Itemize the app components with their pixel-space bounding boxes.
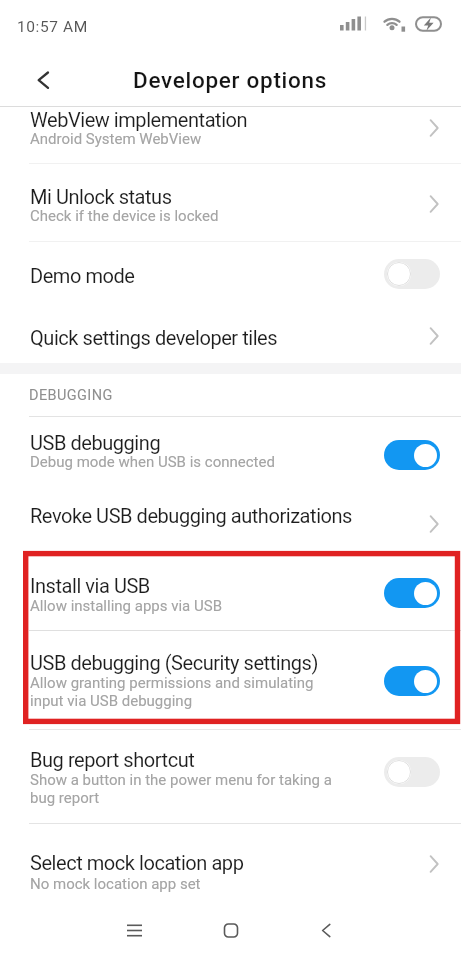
staticText: No mock location app set bbox=[30, 875, 201, 893]
button[interactable] bbox=[384, 440, 440, 470]
staticText: Android System WebView bbox=[30, 130, 202, 148]
button[interactable] bbox=[297, 900, 357, 960]
button[interactable] bbox=[0, 241, 461, 308]
staticText: Check if the device is locked bbox=[30, 207, 219, 225]
staticText: Quick settings developer tiles bbox=[30, 326, 278, 349]
button[interactable] bbox=[384, 757, 440, 787]
staticText: Debug mode when USB is connected bbox=[30, 453, 275, 471]
staticText: Developer options bbox=[133, 67, 328, 93]
staticText: Bug report shortcut bbox=[30, 748, 195, 771]
staticText: Select mock location app bbox=[30, 851, 244, 874]
button[interactable] bbox=[0, 494, 461, 552]
button[interactable] bbox=[24, 64, 60, 96]
button[interactable] bbox=[0, 164, 461, 242]
button[interactable] bbox=[384, 666, 440, 696]
staticText: Show a button in the power menu for taki… bbox=[30, 771, 332, 807]
staticText: USB debugging (Security settings) bbox=[30, 651, 318, 674]
button[interactable] bbox=[384, 578, 440, 608]
button[interactable] bbox=[0, 823, 461, 900]
staticText: DEBUGGING bbox=[29, 387, 113, 404]
staticText: USB debugging bbox=[30, 431, 161, 454]
staticText: Allow installing apps via USB bbox=[30, 597, 222, 615]
staticText: Allow granting permissions and simulatin… bbox=[30, 674, 314, 710]
button[interactable] bbox=[201, 900, 261, 960]
staticText: Demo mode bbox=[30, 264, 135, 287]
button[interactable] bbox=[0, 630, 461, 729]
button[interactable] bbox=[104, 900, 164, 960]
button[interactable] bbox=[0, 552, 461, 631]
staticText: 10:57 AM bbox=[17, 18, 88, 36]
staticText: Mi Unlock status bbox=[30, 185, 172, 208]
button[interactable] bbox=[0, 87, 461, 164]
staticText: Install via USB bbox=[30, 574, 150, 597]
button[interactable] bbox=[384, 259, 440, 289]
staticText: WebView implementation bbox=[30, 108, 248, 131]
button[interactable] bbox=[0, 417, 461, 494]
button[interactable] bbox=[0, 308, 461, 363]
button[interactable] bbox=[0, 729, 461, 823]
staticText: Revoke USB debugging authorizations bbox=[30, 504, 352, 527]
